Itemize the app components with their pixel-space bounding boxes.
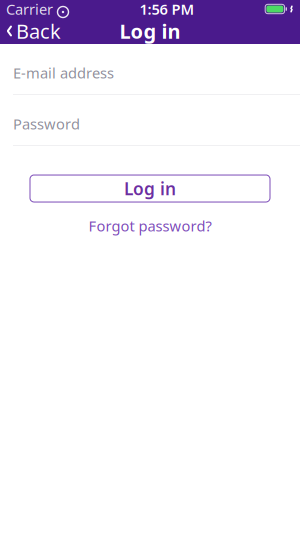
staticText: E-mail address	[13, 63, 114, 82]
button[interactable]: Back	[0, 14, 67, 48]
button[interactable]: Forgot password?	[78, 212, 221, 239]
staticText: Log in	[119, 18, 180, 44]
staticText: Password	[13, 114, 80, 133]
staticText: Forgot password?	[88, 216, 211, 235]
staticText: Log in	[124, 177, 176, 200]
button[interactable]: Log in	[30, 175, 270, 202]
staticText: 1:56 PM	[140, 0, 195, 19]
staticText: Back	[16, 18, 61, 44]
staticText: Carrier	[6, 0, 53, 19]
